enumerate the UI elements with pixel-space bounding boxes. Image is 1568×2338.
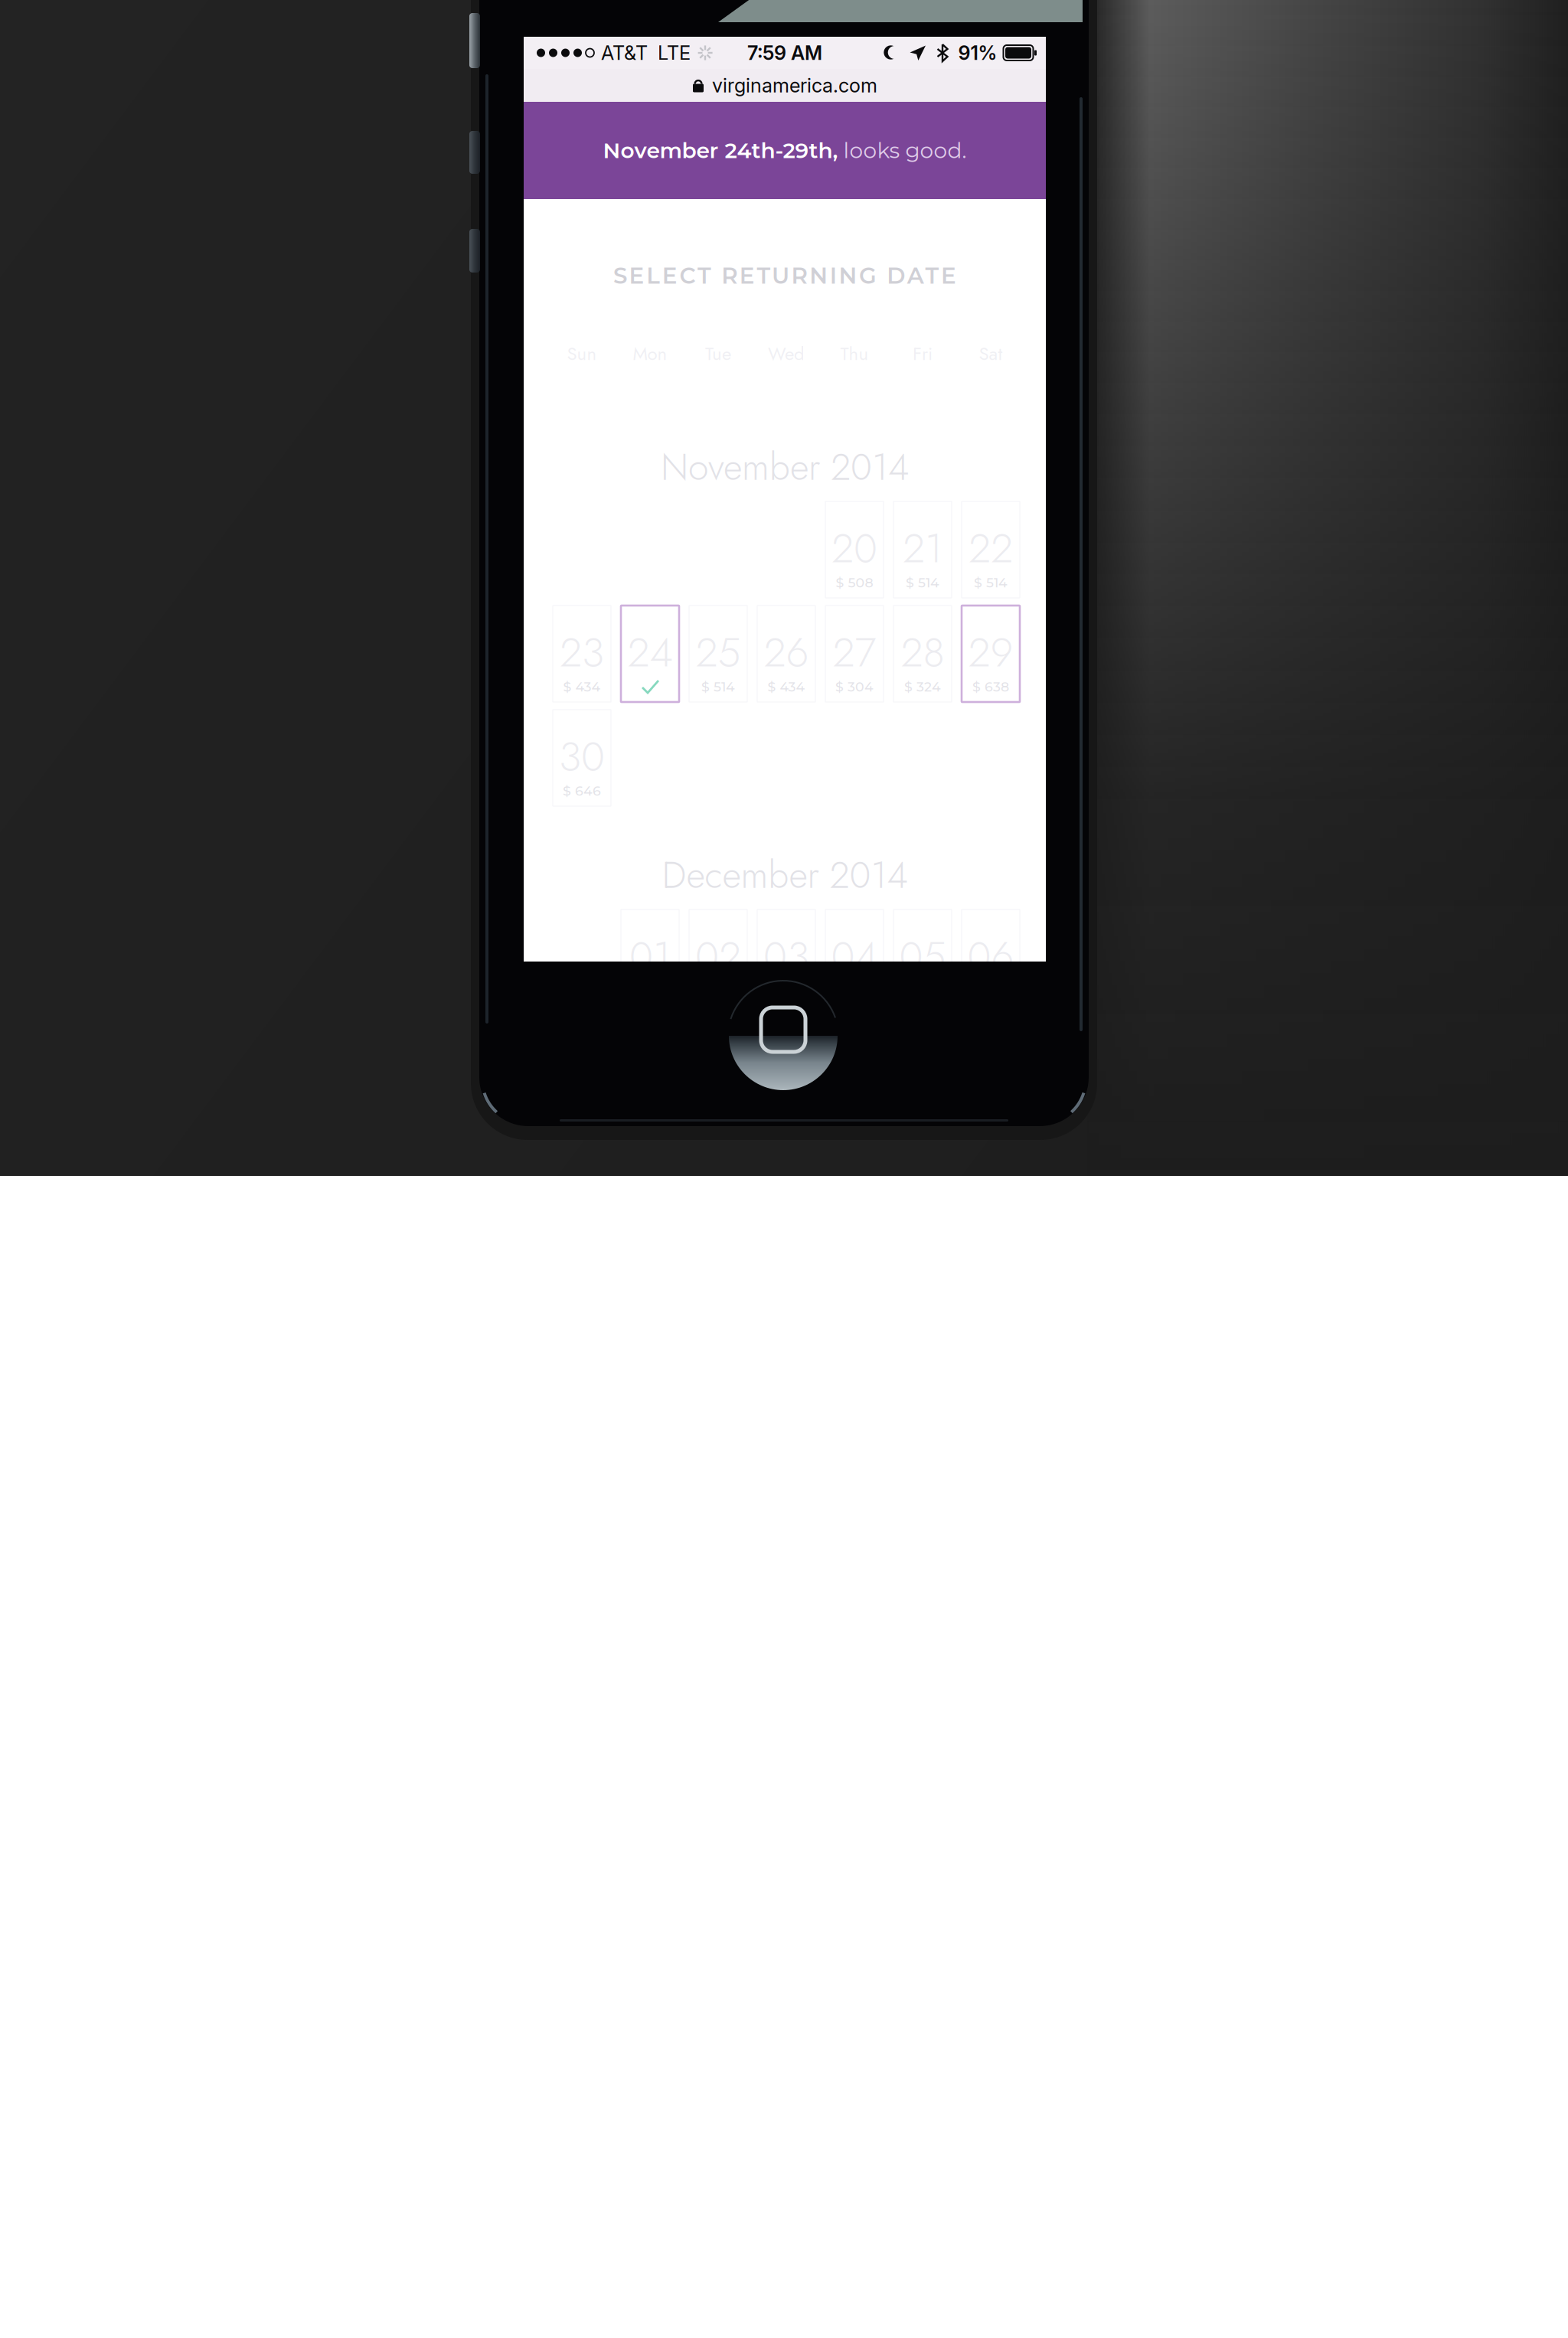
staticText: 20 <box>831 519 877 578</box>
button[interactable]: 28 <box>893 606 952 702</box>
staticText: 21 <box>903 519 942 578</box>
staticText: Mon <box>633 340 667 367</box>
staticText: 7:59 AM <box>747 41 822 65</box>
staticText: 28 <box>901 623 944 682</box>
button[interactable]: 23 <box>553 606 611 702</box>
staticText: $ 434 <box>563 679 601 695</box>
staticText: Tue <box>705 340 731 367</box>
button[interactable]: 26 <box>757 606 815 702</box>
button[interactable]: 04 <box>825 909 884 1006</box>
button[interactable]: Address, virginamerica.com <box>524 69 1046 102</box>
staticText: 91% <box>958 41 997 65</box>
button[interactable]: 02 <box>689 909 747 1006</box>
staticText: $ 324 <box>904 679 941 695</box>
staticText: 05 <box>899 927 946 986</box>
staticText: $ 508 <box>836 574 873 591</box>
staticText: 29 <box>968 623 1013 682</box>
staticText: Wed <box>768 340 805 367</box>
staticText: $ 646 <box>563 783 601 799</box>
button[interactable]: 27 <box>825 606 884 702</box>
staticText: $ 638 <box>972 679 1009 695</box>
staticText: SELECT RETURNING DATE <box>613 262 956 289</box>
staticText: AT&T <box>601 41 648 65</box>
button[interactable]: 03 <box>757 909 815 1006</box>
button[interactable]: 06 <box>962 909 1020 1006</box>
staticText: LTE <box>658 41 691 65</box>
button[interactable]: 21 <box>893 501 952 598</box>
staticText: $ 318 <box>770 983 803 999</box>
button[interactable]: 29 <box>962 606 1020 702</box>
staticText: Sat <box>979 340 1003 367</box>
button[interactable]: 01 <box>621 909 679 1006</box>
button[interactable]: 30 <box>553 710 611 806</box>
staticText: 22 <box>969 519 1013 578</box>
staticText: looks good. <box>838 137 967 163</box>
button[interactable]: 25 <box>689 606 747 702</box>
staticText: Fri <box>913 340 933 367</box>
staticText: $ 514 <box>906 574 939 591</box>
staticText: virginamerica.com <box>712 74 877 97</box>
staticText: November 2014 <box>661 440 909 494</box>
staticText: $ 434 <box>768 679 805 695</box>
staticText: 30 <box>559 727 605 786</box>
staticText: 23 <box>560 623 604 682</box>
button[interactable]: 22 <box>962 501 1020 598</box>
staticText: Sun <box>567 340 597 367</box>
staticText: November 24th-29th, <box>603 137 838 163</box>
staticText: 02 <box>695 927 741 986</box>
staticText: 27 <box>833 623 876 682</box>
staticText: 26 <box>764 623 809 682</box>
staticText: $ 304 <box>835 679 874 695</box>
button[interactable]: 05 <box>893 909 952 1006</box>
staticText: Thu <box>840 340 869 367</box>
staticText: 01 <box>629 927 671 986</box>
button[interactable]: 20 <box>825 501 884 598</box>
staticText: $ 514 <box>701 679 735 695</box>
staticText: 06 <box>967 927 1014 986</box>
staticText: December 2014 <box>662 848 908 902</box>
staticText: $ 514 <box>974 574 1008 591</box>
staticText: 04 <box>831 927 878 986</box>
staticText: 25 <box>696 623 741 682</box>
button[interactable]: 24 <box>621 606 679 702</box>
button[interactable]: Home <box>727 980 839 1092</box>
staticText: 03 <box>763 927 809 986</box>
staticText: 24 <box>627 623 673 682</box>
